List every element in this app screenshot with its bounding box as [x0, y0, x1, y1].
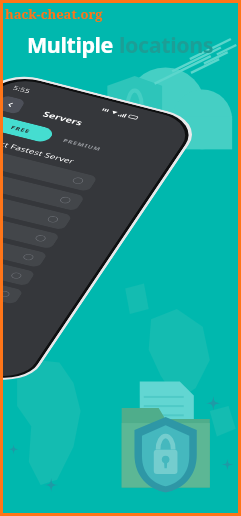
staticText: 5:55: [11, 83, 32, 95]
button[interactable]: [3, 264, 14, 302]
staticText: Multiple: [27, 30, 114, 59]
button[interactable]: PREMIUM: [47, 130, 117, 159]
staticText: FREE: [10, 124, 32, 134]
staticText: PREMIUM: [62, 137, 103, 152]
staticText: locations: [119, 30, 214, 59]
button[interactable]: [3, 226, 38, 266]
button[interactable]: [3, 168, 75, 209]
button[interactable]: [3, 245, 26, 284]
button[interactable]: [3, 207, 50, 247]
button[interactable]: [3, 148, 88, 190]
staticText: Select Fastest Server: [3, 135, 77, 166]
button[interactable]: Back: [3, 95, 26, 115]
staticText: Servers: [41, 109, 85, 127]
button[interactable]: FREE: [3, 114, 56, 144]
button[interactable]: [3, 187, 63, 228]
staticText: hack-cheat.org: [5, 5, 103, 23]
